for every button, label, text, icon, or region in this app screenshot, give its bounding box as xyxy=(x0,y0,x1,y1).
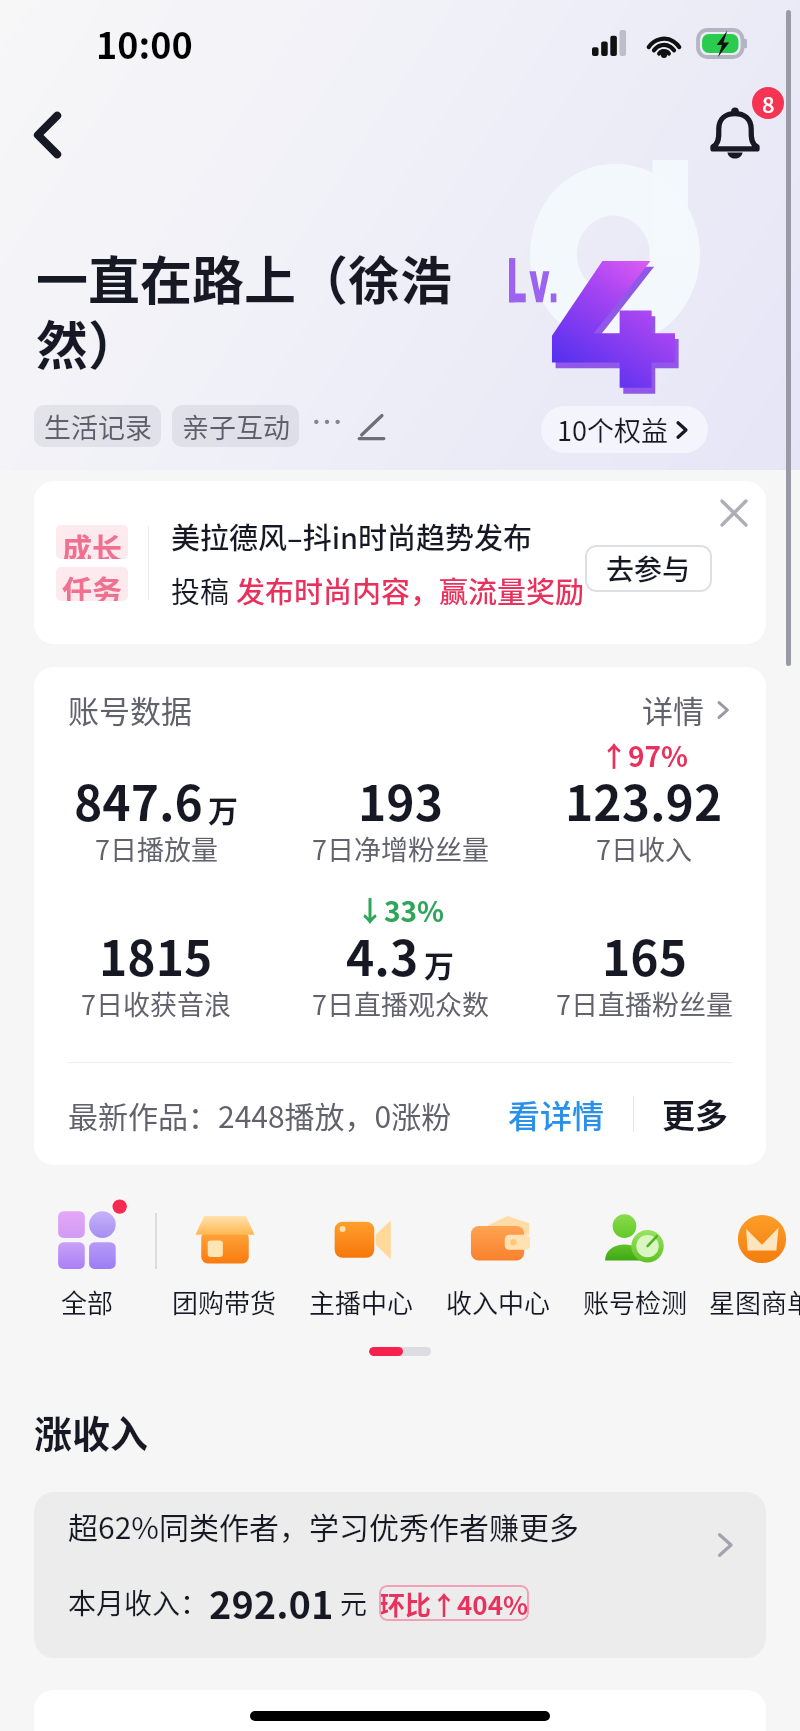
button[interactable]: 165 xyxy=(522,906,766,1033)
button[interactable]: 生活记录 xyxy=(34,405,161,447)
button[interactable]: 主播中心 xyxy=(293,1203,430,1321)
button[interactable]: Back xyxy=(8,95,88,175)
button[interactable]: 星图商单 xyxy=(704,1203,800,1321)
staticText: 292.01 xyxy=(209,1575,334,1630)
staticText: 超62%同类作者，学习优秀作者赚更多 xyxy=(68,1504,579,1547)
button[interactable]: 收入中心 xyxy=(430,1203,567,1321)
button[interactable]: Close xyxy=(712,491,756,535)
button[interactable]: 193 xyxy=(278,751,522,878)
staticText: 生活记录 xyxy=(44,407,152,446)
staticText: 847.6 xyxy=(74,765,203,835)
staticText: 123.92 xyxy=(565,765,723,835)
button[interactable]: 超62%同类作者，学习优秀作者赚更多 xyxy=(34,1492,766,1658)
staticText: 165 xyxy=(602,920,687,990)
staticText: 发布时尚内容，赢流量奖励 xyxy=(236,569,585,611)
staticText: 团购带货 xyxy=(172,1283,277,1321)
staticText: 任务 xyxy=(62,567,122,601)
staticText: 亲子互动 xyxy=(182,407,290,446)
staticText: 去参与 xyxy=(606,548,691,589)
staticText: … xyxy=(311,397,344,443)
button[interactable]: Notifications xyxy=(690,90,780,180)
staticText: 7日直播观众数 xyxy=(312,984,489,1023)
button[interactable]: 10个权益 xyxy=(541,406,708,453)
staticText: ↓33% xyxy=(356,890,445,928)
staticText: 本月收入： xyxy=(68,1582,209,1623)
button[interactable]: ↓33% xyxy=(278,906,522,1033)
staticText: 4.3 xyxy=(346,920,419,990)
button[interactable]: 团购带货 xyxy=(156,1203,293,1321)
staticText: 星图商单 xyxy=(709,1283,800,1321)
staticText: 7日收入 xyxy=(596,829,692,868)
staticText: 账号数据 xyxy=(68,687,192,732)
staticText: 1815 xyxy=(99,920,213,990)
button[interactable]: 亲子互动 xyxy=(172,405,299,447)
staticText: 7日播放量 xyxy=(95,829,218,868)
staticText: 10个权益 xyxy=(557,410,668,449)
staticText: 最新作品：2448播放，0涨粉 xyxy=(68,1093,452,1136)
staticText: 看详情 xyxy=(508,1091,605,1137)
staticText: 账号检测 xyxy=(583,1283,688,1321)
button[interactable]: 1815 xyxy=(34,906,278,1033)
button[interactable]: 847.6 xyxy=(34,751,278,878)
button[interactable]: 更多 xyxy=(656,1084,734,1144)
staticText: ↑97% xyxy=(600,735,689,773)
staticText: 主播中心 xyxy=(309,1283,414,1321)
staticText: 7日直播粉丝量 xyxy=(556,984,733,1023)
staticText: 7日净增粉丝量 xyxy=(312,829,489,868)
staticText: 万 xyxy=(424,942,454,985)
staticText: 更多 xyxy=(662,1090,728,1138)
staticText: 8 xyxy=(762,87,775,119)
staticText: 成长 xyxy=(62,525,122,559)
button[interactable]: 看详情 xyxy=(502,1085,611,1143)
staticText: 一直在路上（徐浩 然） xyxy=(36,240,453,380)
staticText: 环比↑404% xyxy=(379,1585,529,1621)
button[interactable]: 去参与 xyxy=(585,545,712,592)
staticText: 万 xyxy=(208,787,238,830)
staticText: 7日收获音浪 xyxy=(81,984,231,1023)
staticText: 收入中心 xyxy=(446,1283,551,1321)
staticText: 全部 xyxy=(61,1283,114,1321)
staticText: 投稿 xyxy=(171,569,236,611)
button[interactable]: 全部 xyxy=(19,1203,156,1321)
button[interactable]: 账号检测 xyxy=(567,1203,704,1321)
button[interactable]: 详情 xyxy=(636,681,740,738)
staticText: 元 xyxy=(334,1583,368,1622)
staticText: 涨收入 xyxy=(34,1404,149,1459)
staticText: 详情 xyxy=(642,687,704,732)
staticText: 10:00 xyxy=(96,17,193,69)
staticText: 美拉德风–抖in时尚趋势发布 xyxy=(171,515,533,557)
staticText: 193 xyxy=(358,765,443,835)
button[interactable]: 成长 xyxy=(34,481,766,644)
button[interactable]: Edit tags xyxy=(350,406,390,446)
button[interactable]: ↑97% xyxy=(522,751,766,878)
